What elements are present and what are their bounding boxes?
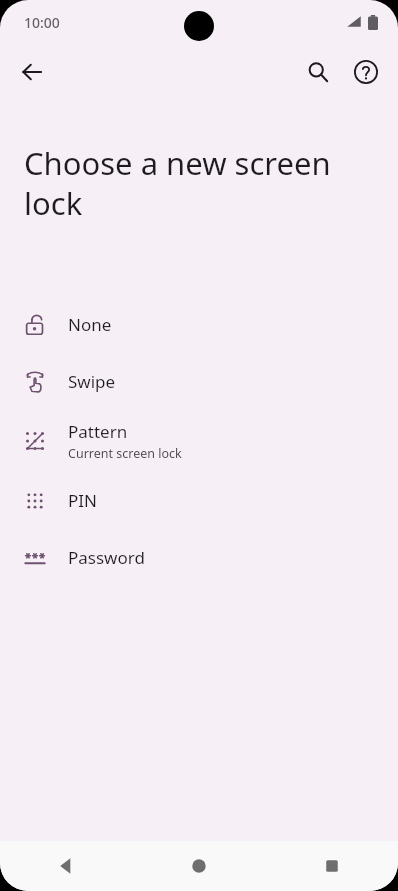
button[interactable]: Pattern [0, 410, 398, 472]
staticText: None [68, 313, 112, 336]
staticText: 10:00 [24, 13, 60, 32]
staticText: Password [68, 546, 145, 569]
button[interactable]: Swipe [0, 353, 398, 410]
button[interactable]: None [0, 296, 398, 353]
button[interactable]: Password [0, 529, 398, 586]
button[interactable]: Recents [265, 841, 398, 891]
button[interactable]: Search [294, 48, 342, 96]
button[interactable]: Home [132, 841, 265, 891]
button[interactable]: Back [8, 48, 56, 96]
button[interactable]: PIN [0, 472, 398, 529]
staticText: Swipe [68, 370, 116, 393]
staticText: Choose a new screen lock [24, 142, 364, 224]
button[interactable]: Help [342, 48, 390, 96]
staticText: Current screen lock [68, 445, 182, 462]
staticText: PIN [68, 489, 97, 512]
button[interactable]: Back [0, 841, 132, 891]
staticText: Pattern [68, 420, 128, 443]
